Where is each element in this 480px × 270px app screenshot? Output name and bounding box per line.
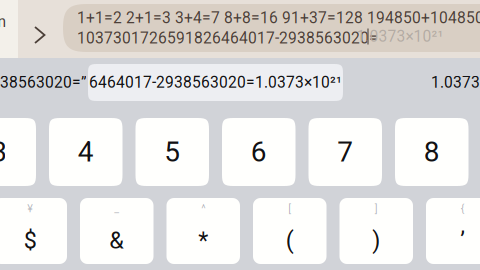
- staticText: 1.0373×10²¹: [431, 73, 480, 92]
- staticText: ’: [460, 227, 465, 254]
- staticText: 5: [164, 136, 180, 168]
- staticText: 6: [251, 136, 267, 168]
- staticText: ): [372, 227, 380, 254]
- staticText: [: [288, 202, 291, 215]
- staticText: 1+1=2 2+1=3 3+4=7 8+8=16 91+37=128 19485…: [77, 9, 480, 27]
- staticText: 8: [424, 136, 440, 168]
- button[interactable]: 8: [395, 118, 468, 186]
- staticText: n: [0, 13, 6, 31]
- button[interactable]: ¥: [0, 198, 67, 264]
- staticText: &: [109, 227, 124, 254]
- staticText: {: [461, 202, 465, 215]
- staticText: (: [286, 227, 294, 254]
- staticText: 1037301726591826464017-2938563020=: [77, 29, 378, 47]
- staticText: ¥: [27, 202, 33, 215]
- staticText: *: [198, 227, 208, 254]
- button[interactable]: 6: [222, 118, 295, 186]
- staticText: 7: [337, 136, 353, 168]
- button[interactable]: 6464017-2938563020=1.0373×10²¹: [88, 64, 343, 101]
- staticText: =2938563020=”: [0, 73, 87, 92]
- button[interactable]: _: [80, 198, 153, 264]
- staticText: ]: [375, 202, 378, 215]
- button[interactable]: 3: [0, 118, 36, 186]
- staticText: 4: [78, 136, 94, 168]
- staticText: 3: [0, 136, 7, 168]
- button[interactable]: 5: [135, 118, 209, 186]
- staticText: $: [24, 227, 37, 254]
- button[interactable]: ]: [339, 198, 413, 264]
- button[interactable]: 4: [49, 118, 122, 186]
- button[interactable]: =2938563020=”: [0, 64, 87, 101]
- staticText: _: [114, 202, 119, 215]
- button[interactable]: ^: [166, 198, 240, 264]
- button[interactable]: {: [426, 198, 480, 264]
- staticText: ^: [201, 202, 205, 215]
- button[interactable]: 1.0373×10²¹: [431, 64, 480, 101]
- button[interactable]: 7: [308, 118, 382, 186]
- button[interactable]: [: [253, 198, 326, 264]
- button[interactable]: 1+1=2 2+1=3 3+4=7 8+8=16 91+37=128 19485…: [63, 4, 480, 52]
- staticText: 6464017-2938563020=1.0373×10²¹: [89, 73, 342, 92]
- staticText: 1.0373×10²¹: [356, 27, 443, 46]
- button[interactable]: Open conversation: [26, 18, 54, 52]
